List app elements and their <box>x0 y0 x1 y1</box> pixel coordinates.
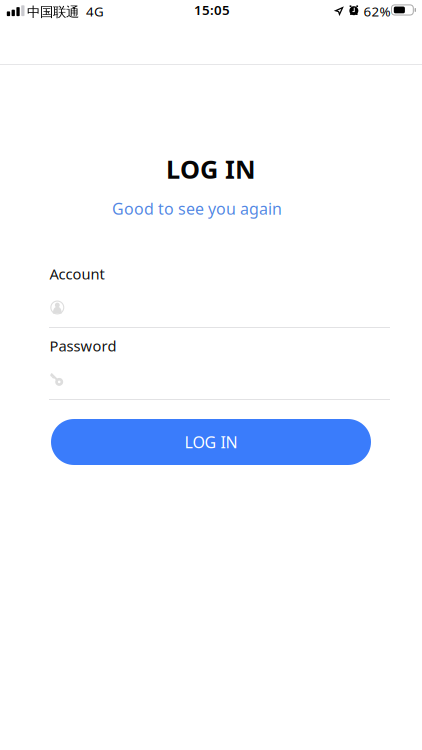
staticText: 15:05 <box>194 1 230 18</box>
staticText: LOG IN <box>166 152 256 184</box>
staticText: 中国联通 <box>27 4 79 20</box>
button[interactable]: Account <box>49 299 390 328</box>
button[interactable]: LOG IN <box>51 419 371 465</box>
staticText: Good to see you again <box>112 198 282 218</box>
staticText: 4G <box>86 2 104 19</box>
staticText: Account <box>49 264 104 283</box>
staticText: LOG IN <box>184 431 237 453</box>
staticText: 62% <box>363 2 390 19</box>
button[interactable]: Password <box>49 371 390 400</box>
staticText: Password <box>49 336 116 355</box>
